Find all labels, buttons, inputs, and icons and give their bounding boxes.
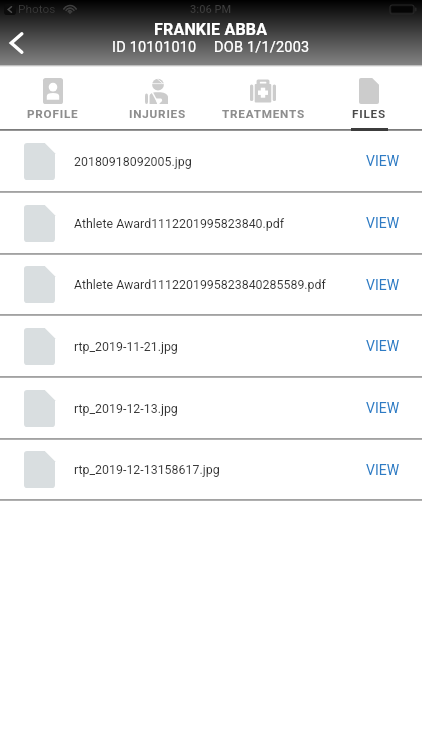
- staticText: TREATMENTS: [222, 107, 305, 121]
- staticText: Athlete Award1112201995823840.pdf: [74, 216, 366, 231]
- staticText: rtp_2019-12-13.jpg: [74, 401, 366, 416]
- staticText: VIEW: [366, 153, 400, 169]
- button[interactable]: rtp_2019-11-21.jpg: [0, 316, 422, 376]
- staticText: ID 10101010: [112, 39, 197, 56]
- button[interactable]: rtp_2019-12-13158617.jpg: [0, 440, 422, 499]
- staticText: INJURIES: [129, 107, 186, 121]
- staticText: Photos: [18, 2, 56, 16]
- staticText: DOB 1/1/2003: [214, 39, 310, 56]
- staticText: 3:06 PM: [190, 3, 232, 16]
- staticText: VIEW: [366, 215, 400, 231]
- staticText: rtp_2019-12-13158617.jpg: [74, 462, 366, 477]
- button[interactable]: rtp_2019-12-13.jpg: [0, 378, 422, 438]
- button[interactable]: Athlete Award1112201995823840.pdf: [0, 193, 422, 253]
- staticText: VIEW: [366, 400, 400, 416]
- staticText: Athlete Award1112201995823840285589.pdf: [74, 277, 366, 292]
- button[interactable]: Back: [0, 25, 35, 61]
- button[interactable]: INJURIES: [105, 67, 210, 131]
- button[interactable]: FILES: [316, 67, 422, 131]
- staticText: rtp_2019-11-21.jpg: [74, 339, 366, 354]
- staticText: VIEW: [366, 462, 400, 478]
- button[interactable]: Athlete Award1112201995823840285589.pdf: [0, 255, 422, 314]
- button[interactable]: 20180918092005.jpg: [0, 131, 422, 191]
- staticText: VIEW: [366, 277, 400, 293]
- staticText: FILES: [352, 107, 386, 121]
- button[interactable]: TREATMENTS: [210, 67, 316, 131]
- staticText: PROFILE: [27, 107, 79, 121]
- button[interactable]: PROFILE: [0, 67, 105, 131]
- staticText: 20180918092005.jpg: [74, 154, 366, 169]
- staticText: VIEW: [366, 338, 400, 354]
- staticText: FRANKIE ABBA: [154, 20, 268, 39]
